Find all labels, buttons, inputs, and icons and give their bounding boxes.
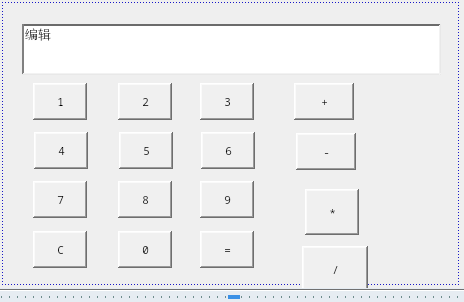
staticText: 0 [142, 242, 149, 257]
button[interactable]: - [296, 133, 356, 170]
button[interactable]: 6 [201, 132, 255, 169]
staticText: 9 [224, 192, 231, 207]
staticText: 8 [142, 192, 149, 207]
button[interactable]: 9 [200, 181, 254, 218]
staticText: 7 [57, 192, 64, 207]
button[interactable]: 7 [33, 181, 87, 218]
button[interactable]: C [33, 231, 87, 268]
button[interactable]: 3 [200, 83, 254, 120]
staticText: 5 [143, 143, 150, 158]
staticText: = [224, 242, 231, 257]
staticText: 4 [58, 143, 65, 158]
staticText: + [321, 94, 328, 109]
staticText: 1 [57, 94, 64, 109]
staticText: 3 [224, 94, 231, 109]
staticText: * [329, 205, 336, 220]
button[interactable]: 2 [118, 83, 172, 120]
staticText: 编辑 [25, 26, 51, 42]
button[interactable]: 5 [119, 132, 173, 169]
staticText: / [332, 262, 339, 277]
button[interactable]: = [200, 231, 254, 268]
button[interactable]: 8 [118, 181, 172, 218]
button[interactable]: 4 [34, 132, 88, 169]
button[interactable]: * [305, 189, 359, 235]
button[interactable]: 编辑 [22, 24, 441, 75]
staticText: C [57, 242, 64, 257]
staticText: - [323, 144, 330, 159]
button[interactable]: + [294, 83, 354, 120]
button[interactable]: 0 [118, 231, 172, 268]
staticText: 2 [142, 94, 149, 109]
button[interactable]: / [302, 246, 368, 293]
staticText: 6 [225, 143, 232, 158]
button[interactable]: 1 [33, 83, 87, 120]
